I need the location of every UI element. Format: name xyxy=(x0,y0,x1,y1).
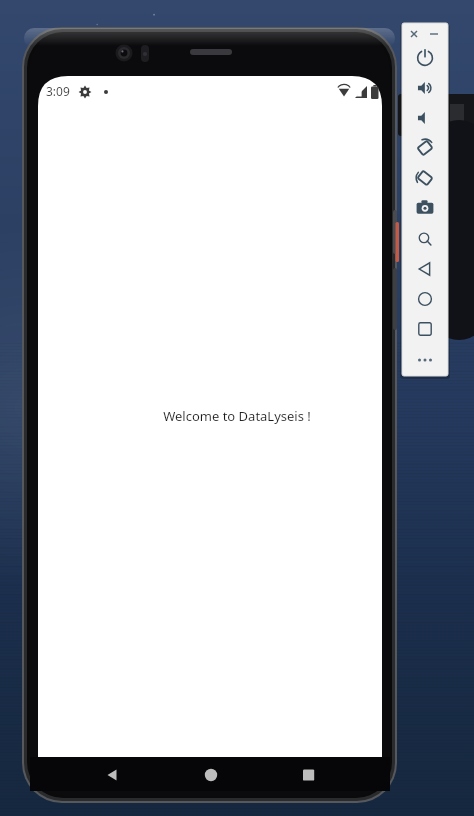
button[interactable]: Rotate left xyxy=(406,135,444,161)
button[interactable]: Back xyxy=(406,256,444,282)
button[interactable]: Rotate right xyxy=(406,165,444,191)
button[interactable]: Home xyxy=(406,286,444,312)
button[interactable]: Volume down xyxy=(406,105,444,131)
button[interactable]: Welcome to DataLyseis ! xyxy=(157,405,317,427)
button[interactable]: Home xyxy=(191,757,231,791)
staticText: 3:09 xyxy=(46,83,70,99)
button[interactable]: Close xyxy=(406,25,420,41)
button[interactable]: Back xyxy=(92,757,132,791)
button[interactable]: Zoom xyxy=(406,226,444,252)
button[interactable]: Recent apps xyxy=(406,316,444,342)
button[interactable]: Take screenshot xyxy=(406,195,444,221)
button[interactable]: More options xyxy=(406,347,444,373)
button[interactable]: Volume up xyxy=(406,75,444,101)
button[interactable]: Minimize xyxy=(427,25,443,41)
staticText: Welcome to DataLyseis ! xyxy=(163,407,311,425)
button[interactable]: Power xyxy=(406,45,444,71)
button[interactable]: Recent apps xyxy=(289,757,329,791)
